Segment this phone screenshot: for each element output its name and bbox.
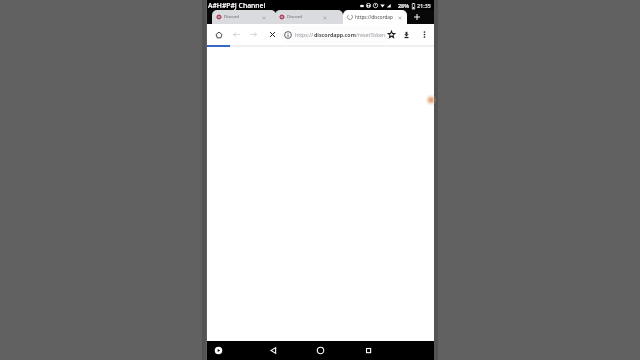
button[interactable]: Forward — [245, 24, 261, 45]
staticText: 21:35 — [417, 2, 431, 9]
staticText: Discord — [224, 14, 259, 20]
staticText: https:// — [295, 31, 314, 38]
button[interactable]: Stop loading — [264, 24, 280, 45]
button[interactable]: Close tab — [320, 13, 329, 22]
staticText: Discord — [287, 14, 320, 20]
button[interactable]: Address bar — [280, 24, 392, 45]
button[interactable]: More options — [416, 24, 432, 45]
button[interactable]: Bookmark — [383, 24, 399, 45]
button[interactable]: Close tab — [259, 13, 268, 22]
staticText: https://discordap — [355, 14, 395, 20]
button[interactable]: New tab — [408, 10, 425, 24]
staticText: /resetToken — [356, 31, 386, 38]
button[interactable]: Recents — [359, 341, 377, 360]
staticText: 28% — [398, 2, 410, 9]
button[interactable]: Download — [398, 24, 414, 45]
button[interactable]: Close tab — [395, 13, 404, 22]
button[interactable]: Discord — [212, 10, 276, 24]
button[interactable]: Discord — [275, 10, 343, 24]
button[interactable]: Back — [228, 24, 244, 45]
button[interactable]: Home — [211, 24, 227, 45]
button[interactable]: Home — [311, 341, 329, 360]
button[interactable]: Record — [209, 341, 227, 360]
button[interactable]: https://discordap — [343, 10, 407, 24]
button[interactable]: Back — [264, 341, 282, 360]
staticText: A#H#P#J Channel — [208, 1, 266, 10]
staticText: discordapp.com — [314, 31, 356, 38]
